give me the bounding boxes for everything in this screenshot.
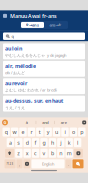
button[interactable]: Assistant xyxy=(2,119,8,125)
staticText: au revoir xyxy=(5,80,27,87)
staticText: y xyxy=(47,128,50,136)
button[interactable]: f xyxy=(32,138,39,147)
button[interactable]: ?123 xyxy=(4,159,15,168)
staticText: n xyxy=(59,150,62,157)
button[interactable]: o xyxy=(70,127,77,136)
staticText: . xyxy=(68,161,69,166)
button[interactable]: Voice input xyxy=(82,121,86,124)
staticText: au-dessus, sur, en haut xyxy=(5,97,63,104)
button[interactable]: air, mélodie xyxy=(3,61,85,77)
staticText: l xyxy=(77,139,78,146)
staticText: G xyxy=(3,120,6,125)
staticText: q xyxy=(5,128,8,136)
button[interactable]: au-dessus, sur, en haut xyxy=(3,96,85,111)
staticText: a xyxy=(9,139,12,146)
button[interactable]: u xyxy=(53,127,60,136)
staticText: v xyxy=(42,150,45,157)
staticText: u xyxy=(55,128,58,136)
button[interactable]: k xyxy=(65,138,73,147)
staticText: ?123 xyxy=(6,162,13,166)
staticText: b xyxy=(51,150,54,157)
staticText: x xyxy=(26,150,29,157)
staticText: Manuu Awai fr-ans xyxy=(10,12,57,19)
button[interactable]: au loin xyxy=(3,43,85,59)
button[interactable]: y xyxy=(44,127,52,136)
button[interactable]: p xyxy=(78,127,85,136)
button[interactable]: g xyxy=(40,138,48,147)
staticText: z xyxy=(17,150,20,157)
button[interactable]: fr→ans xyxy=(21,22,44,28)
staticText: air, mélodie xyxy=(5,62,36,69)
staticText: j xyxy=(60,139,61,146)
button[interactable]: à xyxy=(18,120,36,125)
button[interactable]: a xyxy=(7,138,14,147)
button[interactable]: c xyxy=(32,149,39,158)
staticText: English xyxy=(42,161,54,166)
staticText: ans→fr xyxy=(49,22,61,28)
button[interactable]: English xyxy=(31,159,64,168)
staticText: t xyxy=(39,128,41,136)
staticText: and xyxy=(42,120,48,125)
button[interactable]: j xyxy=(57,138,64,147)
button[interactable]: m xyxy=(65,149,73,158)
staticText: よむし ゆむ わかれ / ar bredli xyxy=(5,87,57,93)
staticText: i xyxy=(64,128,65,136)
button[interactable]: are xyxy=(55,120,73,125)
button[interactable]: and xyxy=(36,120,54,125)
button[interactable]: w xyxy=(11,127,18,136)
staticText: fr→ans xyxy=(26,22,39,28)
staticText: うえ, / うえ xyxy=(5,105,25,110)
staticText: c xyxy=(34,150,37,157)
button[interactable]: s xyxy=(15,138,22,147)
staticText: w xyxy=(13,128,17,136)
button[interactable]: ans→fr xyxy=(44,22,67,28)
staticText: p xyxy=(80,128,83,136)
button[interactable]: Search xyxy=(72,159,83,168)
staticText: q xyxy=(12,33,14,39)
button[interactable]: h xyxy=(49,138,56,147)
staticText: s xyxy=(17,139,20,146)
staticText: o xyxy=(72,128,75,136)
staticText: à xyxy=(26,120,28,125)
button[interactable]: z xyxy=(15,149,22,158)
staticText: やむしんえるをんじゃ y de jagagh xyxy=(5,52,66,58)
button[interactable]: t xyxy=(36,127,43,136)
button[interactable]: e xyxy=(19,127,27,136)
staticText: are xyxy=(61,120,67,125)
staticText: d xyxy=(26,139,29,146)
button[interactable]: q xyxy=(3,32,85,40)
staticText: m xyxy=(67,150,72,157)
button[interactable]: d xyxy=(23,138,31,147)
button[interactable]: b xyxy=(49,149,56,158)
button[interactable]: v xyxy=(40,149,48,158)
button[interactable]: n xyxy=(57,149,64,158)
staticText: au loin xyxy=(5,45,22,52)
staticText: r xyxy=(30,128,32,136)
staticText: e xyxy=(21,128,24,136)
staticText: k xyxy=(68,139,71,146)
button[interactable]: Menu xyxy=(3,14,7,18)
button[interactable]: , xyxy=(16,159,22,168)
button[interactable]: Shift xyxy=(5,149,14,158)
button[interactable]: . xyxy=(65,159,71,168)
staticText: ofx / おんど xyxy=(5,70,25,75)
button[interactable]: l xyxy=(74,138,81,147)
staticText: , xyxy=(19,161,20,166)
staticText: f xyxy=(35,139,37,146)
button[interactable]: Emoji xyxy=(23,159,30,168)
button[interactable]: Backspace xyxy=(74,149,83,158)
button[interactable]: x xyxy=(23,149,31,158)
button[interactable]: q xyxy=(2,127,10,136)
staticText: h xyxy=(51,139,54,146)
button[interactable]: au revoir xyxy=(3,78,85,94)
button[interactable]: i xyxy=(61,127,69,136)
button[interactable]: r xyxy=(28,127,35,136)
staticText: g xyxy=(42,139,45,146)
